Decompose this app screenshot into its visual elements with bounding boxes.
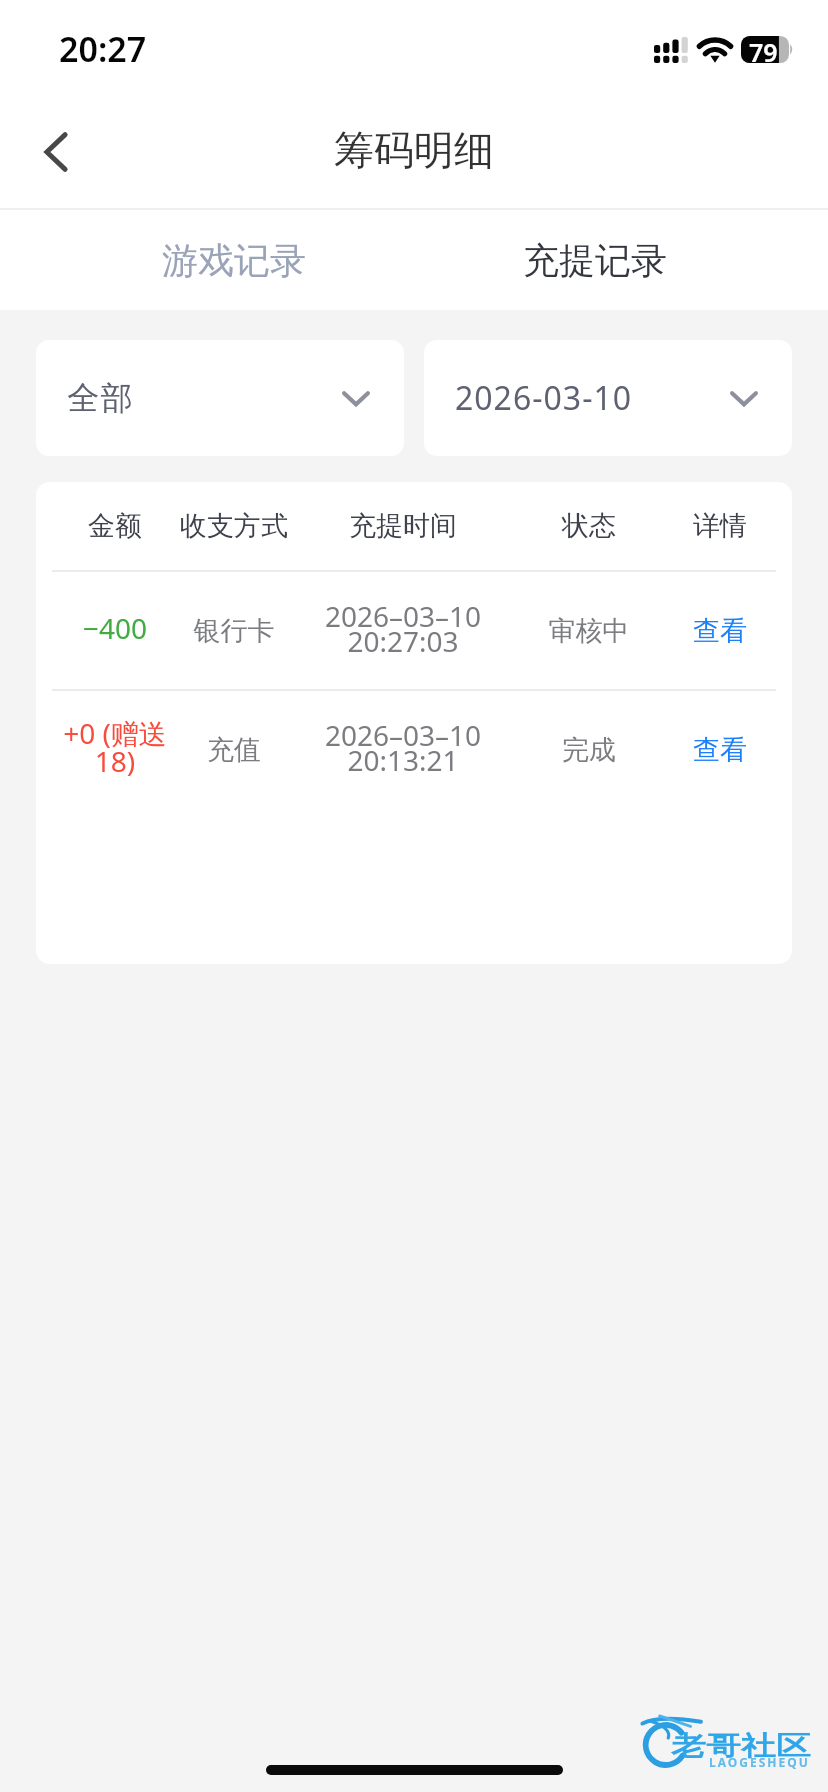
staticText: +0 (赠送 18) — [40, 714, 190, 780]
staticText: 充提记录 — [523, 238, 667, 283]
staticText: 老哥社区 — [671, 1729, 811, 1762]
staticText: 详情 — [655, 509, 785, 543]
staticText: 审核中 — [519, 614, 659, 648]
button[interactable]: −400 — [36, 572, 792, 689]
staticText: 状态 — [519, 509, 659, 543]
staticText: 银行卡 — [169, 614, 299, 648]
staticText: 充值 — [169, 733, 299, 767]
staticText: 完成 — [519, 733, 659, 767]
button[interactable]: Back — [0, 94, 108, 208]
button[interactable]: 充提记录 — [475, 210, 715, 310]
staticText: 金额 — [40, 509, 190, 543]
staticText: 收支方式 — [169, 509, 299, 543]
staticText: 查看 — [655, 733, 785, 767]
staticText: 2026-03-10 — [455, 376, 633, 420]
staticText: 20:27 — [59, 26, 147, 72]
staticText: 全部 — [67, 378, 133, 418]
staticText: 79 — [749, 35, 778, 62]
staticText: 游戏记录 — [162, 238, 306, 283]
staticText: 查看 — [655, 614, 785, 648]
button[interactable]: +0 (赠送 18) — [36, 691, 792, 808]
button[interactable]: 全部 — [36, 340, 404, 456]
staticText: 筹码明细 — [334, 125, 494, 175]
staticText: 2026–03–10 20:13:21 — [303, 716, 503, 779]
button[interactable]: 2026-03-10 — [424, 340, 792, 456]
button[interactable]: 游戏记录 — [114, 210, 354, 310]
staticText: 2026–03–10 20:27:03 — [303, 597, 503, 660]
staticText: 充提时间 — [303, 509, 503, 543]
staticText: −400 — [40, 609, 190, 647]
staticText: LAOGESHEQU — [709, 1754, 810, 1770]
